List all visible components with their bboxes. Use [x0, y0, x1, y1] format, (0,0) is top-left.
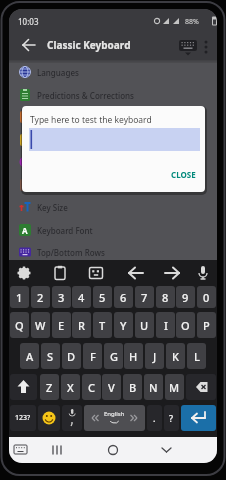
button[interactable] [102, 439, 124, 461]
button[interactable]: 1 [10, 286, 29, 308]
button[interactable]: K [166, 343, 185, 369]
staticText: 10:03 [18, 16, 39, 27]
staticText: CLOSE [171, 169, 196, 180]
staticText: ? [169, 412, 174, 424]
staticText: Y [120, 318, 127, 333]
button[interactable]: Y [114, 312, 133, 338]
button[interactable]: Q [10, 312, 29, 338]
button[interactable]: 7 [135, 286, 154, 308]
staticText: K [172, 349, 179, 364]
button[interactable]: I [156, 312, 175, 338]
button[interactable]: M [165, 374, 184, 400]
staticText: D [67, 349, 76, 364]
staticText: I [164, 318, 168, 333]
staticText: 123? [15, 413, 31, 423]
button[interactable] [20, 36, 38, 54]
button[interactable]: 123? [10, 405, 36, 431]
button[interactable] [181, 405, 216, 431]
staticText: Z [46, 380, 53, 395]
staticText: Key Size [37, 202, 68, 213]
button[interactable]: 3 [52, 286, 71, 308]
button[interactable] [84, 405, 145, 431]
button[interactable] [199, 39, 213, 55]
button[interactable] [10, 374, 37, 400]
staticText: H [129, 349, 138, 364]
button[interactable] [155, 439, 177, 461]
staticText: 3 [58, 290, 65, 305]
staticText: B [129, 380, 137, 395]
button[interactable] [38, 405, 60, 431]
staticText: Q [15, 318, 24, 333]
button[interactable]: V [102, 374, 121, 400]
button[interactable] [29, 128, 200, 151]
staticText: M [169, 380, 180, 395]
staticText: P [203, 318, 210, 333]
button[interactable]: Z [40, 374, 59, 400]
button[interactable]: 0 [197, 286, 216, 308]
button[interactable]: W [31, 312, 50, 338]
staticText: F [90, 349, 96, 364]
button[interactable]: X [61, 374, 80, 400]
staticText: S [47, 349, 54, 364]
button[interactable]: . [147, 405, 162, 431]
button[interactable]: J [145, 343, 164, 369]
staticText: X [67, 380, 74, 395]
button[interactable]: S [41, 343, 60, 369]
button[interactable] [177, 37, 199, 57]
staticText: English [104, 410, 125, 418]
button[interactable]: F [83, 343, 102, 369]
staticText: O [181, 318, 190, 333]
staticText: W [35, 318, 46, 333]
button[interactable]: Top/Bottom Rows [9, 240, 217, 263]
button[interactable]: 8 [156, 286, 175, 308]
button[interactable]: E [52, 312, 71, 338]
button[interactable] [161, 262, 183, 284]
button[interactable]: R [72, 312, 91, 338]
button[interactable] [62, 405, 82, 431]
button[interactable]: CLOSE [166, 164, 200, 184]
button[interactable]: 4 [72, 286, 91, 308]
button[interactable]: 2 [31, 286, 50, 308]
button[interactable]: N [144, 374, 163, 400]
button[interactable]: O [176, 312, 195, 338]
button[interactable]: G [104, 343, 123, 369]
staticText: A [26, 349, 34, 364]
button[interactable] [49, 262, 71, 284]
button[interactable] [192, 262, 214, 284]
button[interactable]: A [9, 218, 217, 241]
button[interactable] [9, 173, 217, 196]
button[interactable]: C [82, 374, 101, 400]
button[interactable] [46, 439, 68, 461]
button[interactable] [125, 262, 147, 284]
button[interactable] [13, 262, 35, 284]
button[interactable] [9, 128, 217, 151]
button[interactable]: Predictions & Corrections [9, 83, 217, 106]
button[interactable] [9, 105, 217, 128]
staticText: J [153, 349, 157, 364]
button[interactable]: L [187, 343, 206, 369]
staticText: L [194, 349, 200, 364]
button[interactable] [9, 150, 217, 173]
button[interactable]: B [123, 374, 142, 400]
button[interactable]: D [62, 343, 81, 369]
staticText: Keyboard Font [37, 225, 93, 236]
button[interactable]: 6 [114, 286, 133, 308]
button[interactable] [85, 262, 107, 284]
button[interactable]: 5 [93, 286, 112, 308]
staticText: Top/Bottom Rows [37, 247, 105, 258]
button[interactable]: H [124, 343, 143, 369]
button[interactable]: A [20, 343, 39, 369]
staticText: V [108, 380, 115, 395]
button[interactable]: T [93, 312, 112, 338]
staticText: Predictions & Corrections [37, 90, 134, 101]
button[interactable]: Key Size [9, 195, 217, 218]
button[interactable]: Languages [9, 60, 217, 83]
staticText: 5 [99, 290, 106, 305]
button[interactable]: P [197, 312, 216, 338]
button[interactable] [11, 439, 33, 461]
staticText: C [88, 380, 95, 395]
button[interactable] [186, 374, 216, 400]
button[interactable]: ? [164, 405, 179, 431]
button[interactable]: 9 [176, 286, 195, 308]
button[interactable]: U [135, 312, 154, 338]
